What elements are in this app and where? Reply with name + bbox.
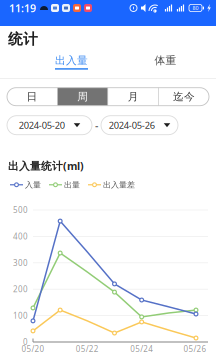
button[interactable]: 月 [108, 88, 158, 106]
button[interactable]: 日 [7, 88, 57, 106]
staticText: 出量 [64, 180, 80, 190]
staticText: 400 [13, 231, 28, 242]
button[interactable]: 出入量 [0, 52, 106, 78]
staticText: 出入量统计(ml) [8, 159, 84, 173]
staticText: 05/22 [76, 344, 99, 354]
staticText: 体重 [154, 54, 176, 67]
staticText: 统计 [8, 30, 38, 48]
staticText: 300 [13, 257, 28, 268]
staticText: 500 [13, 205, 28, 215]
staticText: 月 [128, 90, 139, 103]
staticText: 2024-05-20 [19, 119, 65, 131]
staticText: 100 [13, 310, 28, 321]
staticText: - [95, 118, 98, 132]
staticText: 05/24 [130, 344, 153, 354]
button[interactable]: 体重 [106, 52, 200, 78]
staticText: 0 [23, 337, 28, 347]
button[interactable]: 迄今 [159, 88, 209, 106]
staticText: 05/26 [183, 344, 206, 354]
button[interactable]: 周 [58, 88, 108, 106]
staticText: 11:19 [9, 1, 36, 15]
button[interactable]: 2024-05-20 [7, 116, 92, 135]
staticText: 80 [192, 4, 198, 12]
button[interactable]: 2024-05-26 [101, 116, 178, 135]
staticText: 200 [13, 284, 28, 294]
staticText: 迄今 [173, 90, 195, 103]
staticText: 05/20 [21, 344, 44, 354]
staticText: 出入量差 [103, 180, 135, 190]
staticText: 2024-05-26 [109, 119, 155, 131]
staticText: 出入量 [55, 54, 88, 67]
staticText: 日 [27, 90, 38, 103]
staticText: 周 [77, 90, 88, 103]
staticText: 入量 [25, 180, 41, 190]
